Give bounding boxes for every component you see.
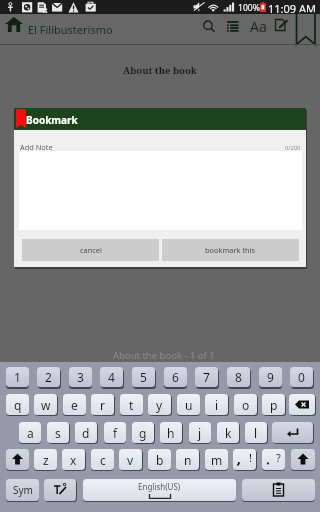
button[interactable]: 4 [100,367,123,387]
button[interactable]: 8 [227,367,250,387]
staticText: s [55,425,61,441]
button[interactable]: s [47,422,69,443]
button[interactable]: f [104,422,126,443]
button[interactable]: o [234,394,257,415]
button[interactable]: w [34,394,57,415]
staticText: v [127,452,134,468]
button[interactable]: 5 [132,367,155,387]
staticText: 9 [267,369,274,385]
staticText: About the book [123,64,197,77]
staticText: 2 [45,369,52,385]
button[interactable]: Edit note [274,18,290,34]
staticText: c [100,452,106,468]
staticText: cancel [80,245,102,255]
staticText: English(US) [138,481,181,492]
staticText: g [139,425,147,441]
button[interactable]: h [160,422,182,443]
button[interactable]: Bookmark [294,14,317,45]
button[interactable]: e [63,394,86,415]
button[interactable]: 9 [259,367,282,387]
staticText: 6 [172,369,179,385]
staticText: 3 [77,369,84,385]
button[interactable]: Clipboard [242,479,315,501]
button[interactable]: Shift [6,449,29,470]
staticText: h [167,425,175,441]
button[interactable]: cancel [22,239,159,261]
button[interactable]: b [148,449,171,470]
staticText: f [113,425,118,441]
staticText: o [242,397,250,413]
staticText: About the book - 1 of 1 [113,349,215,362]
button[interactable]: r [91,394,114,415]
button[interactable]: Voice input [44,479,76,501]
button[interactable]: ? [262,449,285,470]
staticText: 0/200 [285,144,301,152]
staticText: Add Note [20,142,53,152]
button[interactable]: g [132,422,154,443]
button[interactable]: n [176,449,199,470]
staticText: z [43,452,49,468]
button[interactable]: t [120,394,143,415]
button[interactable]: l [245,422,267,443]
button[interactable]: Home [5,17,23,32]
staticText: Aa [250,17,267,35]
button[interactable]: 0 [290,367,313,387]
button[interactable]: x [62,449,85,470]
button[interactable]: c [91,449,114,470]
staticText: n [184,452,192,468]
staticText: j [198,425,202,441]
button[interactable]: Aa [249,17,268,35]
button[interactable]: Space [83,479,236,501]
staticText: a [27,425,34,441]
button[interactable]: Shift [291,449,315,470]
staticText: u [185,397,193,413]
staticText: El Filibusterismo [28,22,113,37]
staticText: 1 [14,369,21,385]
button[interactable]: z [34,449,57,470]
staticText: Bookmark [26,113,78,127]
staticText: 7 [203,369,210,385]
button[interactable]: Enter [272,422,313,443]
staticText: ? [276,450,281,465]
button[interactable]: bookmark this [162,239,299,261]
staticText: b [156,452,164,468]
staticText: x [70,452,77,468]
button[interactable]: j [189,422,211,443]
button[interactable]: i [205,394,228,415]
button[interactable]: m [205,449,228,470]
button[interactable]: 1 [6,367,29,387]
button[interactable]: p [262,394,285,415]
button[interactable]: k [217,422,239,443]
staticText: 5 [140,369,147,385]
button[interactable]: 7 [195,367,218,387]
button[interactable]: q [6,394,29,415]
button[interactable]: u [177,394,200,415]
staticText: l [254,425,258,441]
staticText: k [225,425,232,441]
button[interactable]: 6 [164,367,187,387]
button[interactable]: a [19,422,41,443]
staticText: y [156,397,163,413]
staticText: e [71,397,78,413]
staticText: r [100,397,105,413]
button[interactable]: 2 [37,367,60,387]
button[interactable]: y [148,394,171,415]
button[interactable]: Search [201,18,217,34]
button[interactable]: Delete [289,394,315,415]
button[interactable]: 3 [69,367,92,387]
button[interactable]: Sym [6,479,39,501]
staticText: p [270,397,278,413]
button[interactable]: ! [233,449,256,470]
staticText: 8 [235,369,242,385]
staticText: bookmark this [205,245,256,255]
staticText: t [129,397,134,413]
button[interactable]: v [119,449,142,470]
staticText: 4 [108,369,115,385]
staticText: 11:09 AM [268,1,316,15]
button[interactable]: d [75,422,97,443]
staticText: w [41,397,51,413]
staticText: q [14,397,22,413]
staticText: m [211,452,223,468]
button[interactable]: Contents [226,18,242,34]
